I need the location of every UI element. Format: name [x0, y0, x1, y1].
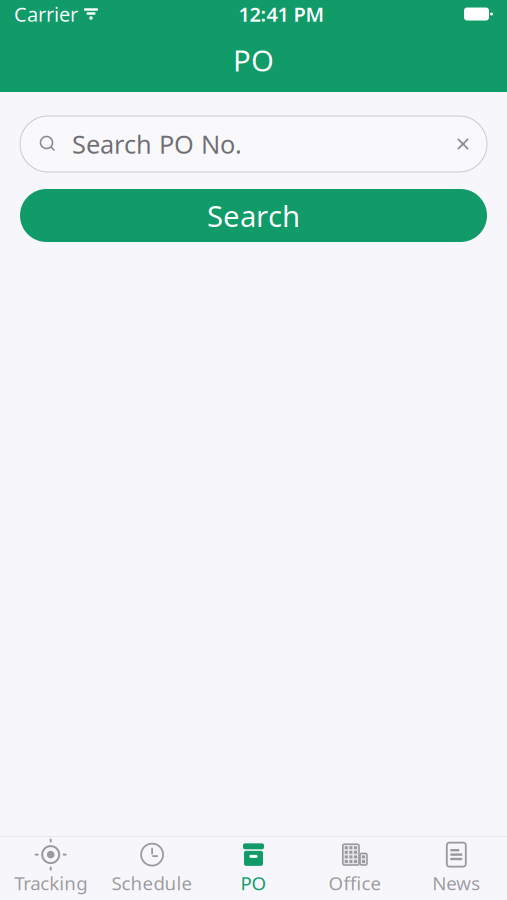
staticText: Carrier — [14, 1, 78, 27]
staticText: Search PO No. — [72, 127, 242, 161]
button[interactable]: Search — [20, 189, 487, 242]
staticText: 12:41 PM — [238, 1, 324, 27]
button[interactable]: PO — [203, 837, 304, 899]
button[interactable]: Schedule — [101, 837, 203, 899]
staticText: PO — [233, 40, 274, 79]
staticText: Office — [328, 871, 381, 895]
button[interactable]: Tracking — [0, 837, 101, 899]
button[interactable]: Office — [304, 837, 406, 899]
staticText: PO — [240, 871, 266, 895]
staticText: Tracking — [14, 871, 87, 895]
staticText: News — [432, 871, 480, 895]
staticText: Schedule — [112, 871, 193, 895]
staticText: Search — [207, 196, 300, 235]
button[interactable]: Clear search text — [439, 116, 487, 172]
button[interactable]: News — [406, 837, 507, 899]
